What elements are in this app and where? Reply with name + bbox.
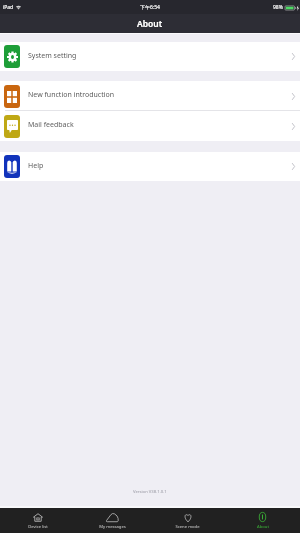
staticText: 下午6:54 bbox=[140, 4, 160, 11]
button[interactable]: System setting bbox=[0, 42, 300, 71]
staticText: Mail feedback bbox=[28, 120, 74, 130]
button[interactable]: Help bbox=[0, 152, 300, 181]
staticText: My messages bbox=[99, 524, 126, 530]
staticText: About bbox=[257, 524, 269, 530]
button[interactable]: Mail feedback bbox=[0, 111, 300, 141]
staticText: About bbox=[137, 18, 163, 30]
button[interactable]: About bbox=[225, 508, 300, 533]
button[interactable]: New function introduction bbox=[0, 81, 300, 111]
button[interactable]: My messages bbox=[75, 508, 150, 533]
staticText: Help bbox=[28, 161, 44, 171]
button[interactable]: Scene mode bbox=[150, 508, 225, 533]
button[interactable]: Device list bbox=[0, 508, 75, 533]
staticText: 98% bbox=[273, 4, 283, 11]
staticText: Device list bbox=[28, 524, 48, 530]
staticText: Version V38.1.0.1 bbox=[133, 489, 167, 495]
staticText: iPad bbox=[3, 4, 14, 11]
staticText: Scene mode bbox=[175, 524, 200, 530]
staticText: New function introduction bbox=[28, 90, 115, 100]
staticText: System setting bbox=[28, 51, 77, 61]
